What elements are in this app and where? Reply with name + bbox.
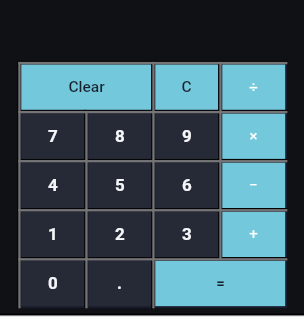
staticText: 4	[48, 175, 58, 195]
staticText: 9	[182, 126, 192, 146]
staticText: ×	[249, 127, 258, 145]
staticText: 7	[48, 126, 58, 146]
button[interactable]: 9	[151, 110, 220, 161]
button[interactable]: 5	[84, 159, 153, 210]
button[interactable]: .	[84, 257, 153, 308]
staticText: .	[117, 273, 122, 293]
button[interactable]: 0	[17, 257, 86, 308]
button[interactable]: ÷	[218, 61, 287, 112]
staticText: ÷	[249, 78, 258, 96]
staticText: −	[249, 176, 258, 194]
button[interactable]: =	[151, 257, 287, 308]
button[interactable]: −	[218, 159, 287, 210]
staticText: 5	[115, 175, 125, 195]
button[interactable]: +	[218, 208, 287, 259]
staticText: 1	[48, 224, 58, 244]
button[interactable]: 8	[84, 110, 153, 161]
staticText: +	[249, 225, 258, 243]
button[interactable]: 2	[84, 208, 153, 259]
staticText: 0	[48, 273, 58, 293]
staticText: 8	[115, 126, 125, 146]
button[interactable]: 6	[151, 159, 220, 210]
button[interactable]: 3	[151, 208, 220, 259]
button[interactable]: 7	[17, 110, 86, 161]
button[interactable]: C	[151, 61, 220, 112]
button[interactable]: Clear	[17, 61, 153, 112]
button[interactable]: 4	[17, 159, 86, 210]
staticText: =	[216, 274, 225, 292]
button[interactable]: ×	[218, 110, 287, 161]
staticText: 2	[115, 224, 125, 244]
staticText: C	[181, 78, 192, 96]
staticText: 3	[182, 224, 192, 244]
staticText: 6	[182, 175, 192, 195]
staticText: Clear	[68, 78, 105, 96]
button[interactable]: 1	[17, 208, 86, 259]
